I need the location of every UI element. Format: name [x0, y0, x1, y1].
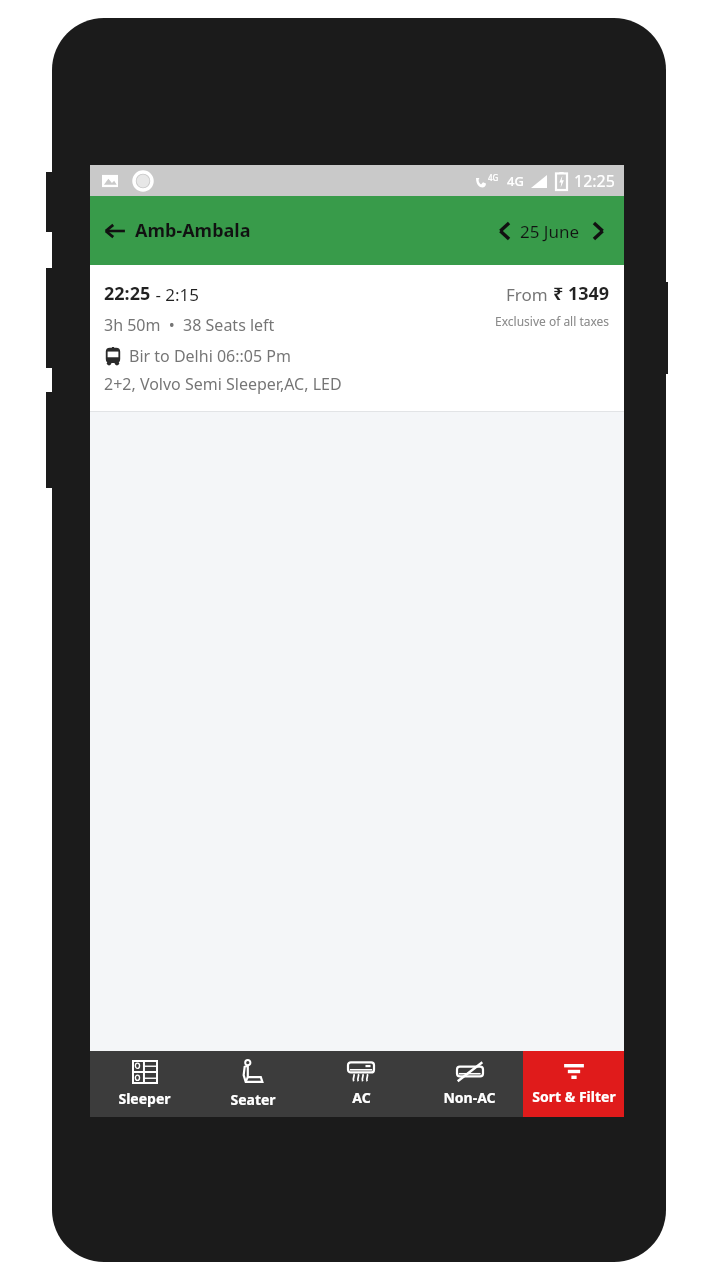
staticText: Amb-Ambala: [135, 218, 251, 243]
staticText: 12:25: [574, 170, 615, 192]
staticText: - 2:15: [151, 283, 200, 306]
staticText: 22:25: [104, 281, 151, 306]
other: Back: [104, 220, 126, 242]
button[interactable]: Next day: [584, 217, 612, 245]
staticText: 3h 50m • 38 Seats left: [104, 314, 275, 336]
button[interactable]: AC: [307, 1051, 415, 1117]
staticText: 4G: [507, 172, 524, 190]
other: Sleeper: [132, 1060, 158, 1084]
other: Seater: [240, 1059, 266, 1085]
button[interactable]: 22:25: [90, 265, 624, 411]
other: AC: [347, 1061, 375, 1083]
button[interactable]: Sleeper: [90, 1051, 199, 1117]
staticText: From: [506, 283, 553, 306]
staticText: Sleeper: [118, 1089, 171, 1108]
button[interactable]: Sort and Filter: [523, 1051, 624, 1117]
button[interactable]: Back: [104, 218, 251, 243]
other: Non-AC: [456, 1061, 484, 1083]
staticText: Exclusive of all taxes: [495, 313, 610, 329]
staticText: ₹ 1349: [553, 281, 610, 306]
staticText: 2+2, Volvo Semi Sleeper,AC, LED: [104, 373, 342, 395]
staticText: Sort & Filter: [532, 1087, 616, 1106]
staticText: Seater: [230, 1090, 276, 1109]
staticText: 4G: [488, 172, 499, 183]
staticText: Bir to Delhi 06::05 Pm: [129, 345, 291, 367]
other: Sort and Filter: [563, 1063, 585, 1080]
staticText: AC: [352, 1088, 371, 1107]
staticText: Non-AC: [443, 1088, 496, 1107]
button[interactable]: Seater: [199, 1051, 307, 1117]
button[interactable]: 25 June: [520, 220, 580, 243]
button[interactable]: Previous day: [490, 217, 518, 245]
button[interactable]: Non-AC: [415, 1051, 523, 1117]
